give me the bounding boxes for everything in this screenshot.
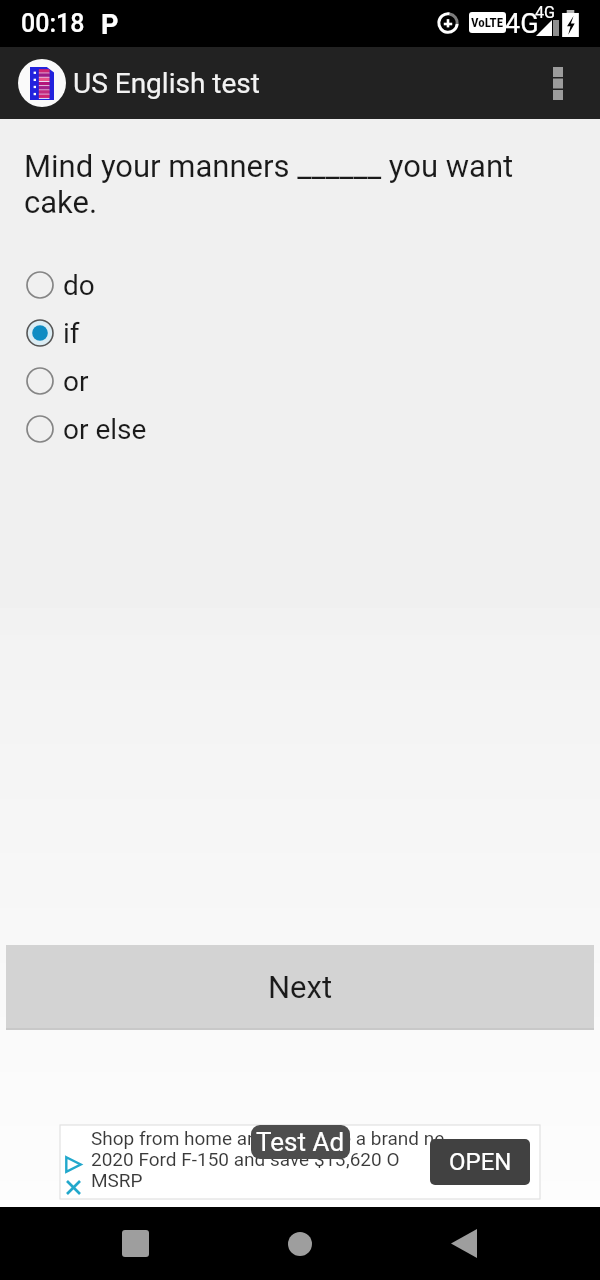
staticText: 4G xyxy=(535,3,555,22)
staticText: Test Ad xyxy=(256,1127,345,1157)
button[interactable]: OPEN xyxy=(430,1139,530,1185)
button[interactable]: Shop from home and test drive a brand ne… xyxy=(60,1125,540,1199)
staticText: do xyxy=(63,269,95,302)
button[interactable]: or xyxy=(0,357,600,405)
button[interactable]: Next xyxy=(6,945,594,1028)
button[interactable]: Recent apps xyxy=(75,1207,195,1280)
staticText: VoLTE xyxy=(471,15,504,30)
staticText: 4G xyxy=(505,8,539,40)
button[interactable]: More options xyxy=(534,47,582,119)
staticText: or xyxy=(63,365,89,398)
staticText: Mind your manners ______ you want cake. xyxy=(24,148,548,221)
button[interactable]: Back xyxy=(404,1207,524,1280)
staticText: OPEN xyxy=(449,1148,512,1176)
button[interactable]: or else xyxy=(0,405,600,453)
staticText: P xyxy=(101,9,119,41)
staticText: 00:18 xyxy=(21,9,85,38)
staticText: Shop from home and test drive a brand ne… xyxy=(91,1127,445,1191)
button[interactable]: if xyxy=(0,309,600,357)
button[interactable]: Home xyxy=(240,1207,360,1280)
staticText: US English test xyxy=(73,67,260,100)
staticText: or else xyxy=(63,413,147,446)
button[interactable]: do xyxy=(0,261,600,309)
staticText: Next xyxy=(268,969,333,1005)
staticText: if xyxy=(63,317,80,350)
